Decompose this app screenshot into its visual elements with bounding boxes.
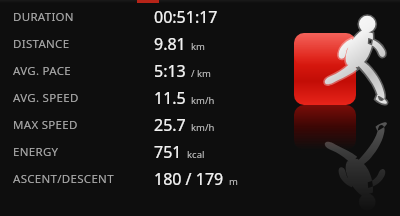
- button[interactable]: ENERGY: [0, 138, 400, 165]
- staticText: km: [191, 40, 205, 53]
- staticText: 00:51:17: [154, 6, 218, 28]
- button[interactable]: MAX SPEED: [0, 111, 400, 138]
- button[interactable]: AVG. PACE: [0, 57, 400, 84]
- staticText: km/h: [191, 121, 215, 134]
- staticText: ENERGY: [13, 144, 59, 160]
- staticText: / km: [191, 67, 211, 80]
- staticText: MAX SPEED: [13, 117, 78, 133]
- staticText: kcal: [187, 148, 205, 161]
- staticText: 751: [154, 141, 182, 163]
- staticText: 9.81: [154, 33, 186, 55]
- staticText: 180 / 179: [154, 168, 224, 190]
- staticText: 11.5: [154, 87, 186, 109]
- staticText: 5:13: [154, 60, 186, 82]
- button[interactable]: AVG. SPEED: [0, 84, 400, 111]
- staticText: DURATION: [13, 9, 74, 25]
- staticText: DISTANCE: [13, 36, 70, 52]
- staticText: ASCENT/DESCENT: [13, 171, 114, 187]
- staticText: 25.7: [154, 114, 186, 136]
- staticText: m: [229, 175, 238, 188]
- button[interactable]: ASCENT/DESCENT: [0, 165, 400, 192]
- staticText: km/h: [191, 94, 215, 107]
- button[interactable]: DURATION: [0, 3, 400, 30]
- staticText: AVG. PACE: [13, 63, 71, 79]
- button[interactable]: Running activity: [284, 0, 400, 216]
- staticText: AVG. SPEED: [13, 90, 79, 106]
- button[interactable]: DISTANCE: [0, 30, 400, 57]
